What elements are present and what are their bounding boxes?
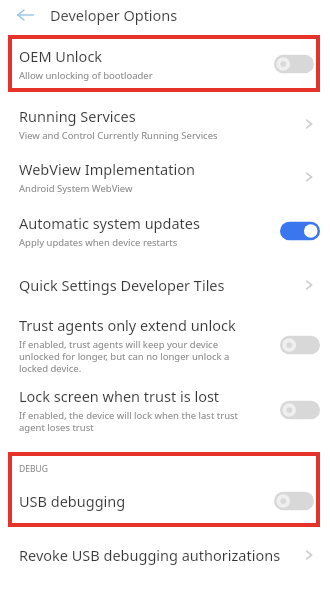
button[interactable]: Toggle off bbox=[280, 334, 320, 356]
staticText: OEM Unlock bbox=[19, 46, 103, 66]
staticText: View and Control Currently Running Servi… bbox=[19, 129, 275, 142]
staticText: If enabled, trust agents will keep your … bbox=[19, 338, 258, 375]
button[interactable]: Lock screen when trust is lost bbox=[0, 378, 330, 442]
staticText: If enabled, the device will lock when th… bbox=[19, 409, 258, 434]
button[interactable]: OEM Unlock bbox=[8, 35, 320, 92]
staticText: Trust agents only extend unlock bbox=[19, 315, 236, 335]
staticText: Revoke USB debugging authorizations bbox=[19, 545, 281, 565]
staticText: DEBUG bbox=[19, 463, 48, 475]
staticText: Android System WebView bbox=[19, 182, 275, 195]
staticText: Apply updates when device restarts bbox=[19, 236, 258, 249]
button[interactable]: Automatic system updates bbox=[0, 204, 330, 258]
button[interactable]: Toggle off bbox=[280, 399, 320, 421]
button[interactable]: Back bbox=[8, 0, 42, 30]
staticText: USB debugging bbox=[19, 491, 274, 511]
staticText: Quick Settings Developer Tiles bbox=[19, 275, 225, 295]
button[interactable]: Toggle off bbox=[274, 53, 314, 75]
button[interactable]: Toggle off bbox=[274, 490, 314, 512]
button[interactable]: WebView Implementation bbox=[0, 150, 330, 204]
button[interactable]: Running Services bbox=[0, 98, 330, 150]
staticText: Allow unlocking of bootloader bbox=[19, 69, 153, 82]
button[interactable]: Trust agents only extend unlock bbox=[0, 312, 330, 378]
button[interactable]: Toggle on bbox=[280, 220, 320, 242]
button[interactable]: Quick Settings Developer Tiles bbox=[0, 258, 330, 312]
staticText: Developer Options bbox=[50, 5, 178, 25]
button[interactable]: USB debugging bbox=[19, 475, 314, 527]
staticText: Automatic system updates bbox=[19, 213, 200, 233]
staticText: Running Services bbox=[19, 106, 136, 126]
button[interactable]: Revoke USB debugging authorizations bbox=[0, 535, 330, 575]
staticText: Lock screen when trust is lost bbox=[19, 386, 220, 406]
staticText: WebView Implementation bbox=[19, 159, 195, 179]
